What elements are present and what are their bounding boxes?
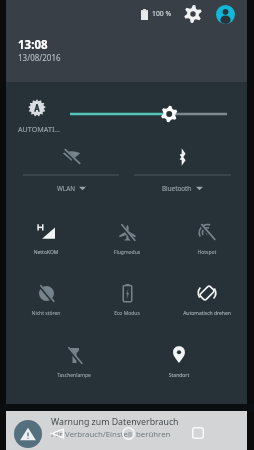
button[interactable]: Automatisch drehen <box>167 267 247 311</box>
button[interactable]: Settings <box>184 5 202 23</box>
staticText: NettoKOM <box>7 249 85 256</box>
staticText: Standort <box>140 372 218 379</box>
button[interactable]: Standort <box>139 329 219 373</box>
staticText: AUTOMATI… <box>18 124 61 134</box>
staticText: WLAN <box>57 184 75 193</box>
staticText: Nicht stören <box>7 310 85 317</box>
staticText: Warnung zum Datenverbrauch <box>51 416 179 428</box>
button[interactable]: Eco Modus <box>87 267 167 311</box>
staticText: 100 % <box>152 9 172 18</box>
button[interactable]: Hotspot <box>167 206 247 250</box>
button[interactable]: Brightness slider <box>60 102 237 126</box>
button[interactable]: User account <box>216 5 235 24</box>
button[interactable]: Home <box>115 424 141 443</box>
staticText: Automatisch drehen <box>168 310 246 317</box>
button[interactable]: Warnung zum Datenverbrauch <box>6 411 247 450</box>
button[interactable]: Taschenlampe <box>34 329 114 373</box>
staticText: Flugmodus <box>88 249 166 256</box>
button[interactable]: Auto brightness <box>23 94 51 122</box>
button[interactable]: Recent apps <box>185 423 211 442</box>
staticText: Bluetooth <box>162 184 192 193</box>
staticText: Taschenlampe <box>35 372 113 379</box>
button[interactable]: NettoKOM <box>6 206 86 250</box>
staticText: Für Verbrauch/Einstell. berühren <box>51 429 171 440</box>
button[interactable]: Back <box>44 424 70 443</box>
staticText: Hotspot <box>168 249 246 256</box>
button[interactable]: Wi-Fi <box>23 144 119 194</box>
button[interactable]: Nicht stören <box>6 267 86 311</box>
staticText: 13/08/2016 <box>18 52 61 63</box>
staticText: 13:08 <box>18 37 48 53</box>
staticText: Eco Modus <box>88 310 166 317</box>
button[interactable]: Bluetooth <box>134 144 231 194</box>
button[interactable]: Flugmodus <box>87 206 167 250</box>
